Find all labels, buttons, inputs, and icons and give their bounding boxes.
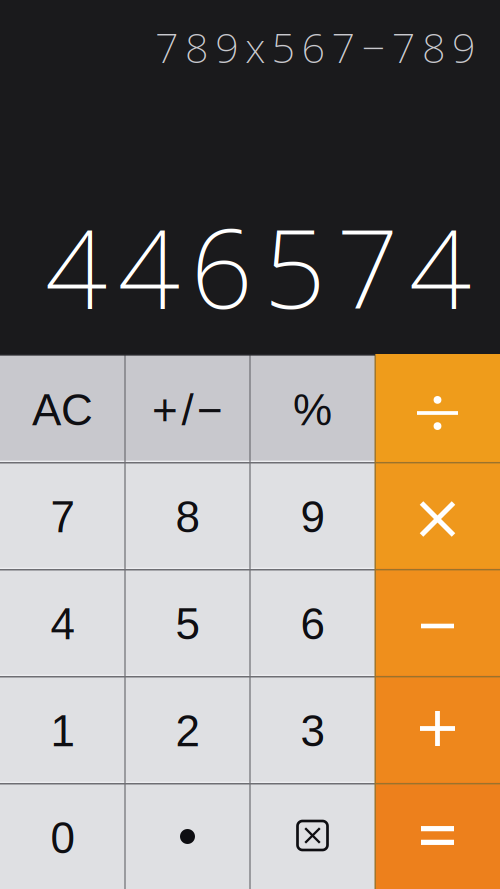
staticText: 446574: [45, 193, 471, 339]
staticText: +/−: [152, 385, 223, 435]
button[interactable]: 9: [250, 461, 375, 568]
button[interactable]: 8: [125, 461, 250, 568]
button[interactable]: %: [250, 354, 375, 461]
button[interactable]: Plus: [375, 675, 500, 782]
button[interactable]: Delete: [250, 782, 375, 889]
staticText: 5: [175, 599, 199, 649]
button[interactable]: AC: [0, 354, 125, 461]
staticText: 3: [300, 706, 324, 756]
staticText: 789x567−789: [155, 20, 476, 74]
button[interactable]: 1: [0, 675, 125, 782]
button[interactable]: +/−: [125, 354, 250, 461]
button[interactable]: 0: [0, 782, 125, 889]
staticText: 7: [50, 492, 74, 542]
button[interactable]: 7: [0, 461, 125, 568]
button[interactable]: 5: [125, 568, 250, 675]
button[interactable]: Equals: [375, 782, 500, 889]
staticText: 9: [300, 492, 324, 542]
staticText: 4: [50, 599, 74, 649]
staticText: 6: [300, 599, 324, 649]
button[interactable]: Minus: [375, 568, 500, 675]
staticText: AC: [32, 385, 93, 435]
button[interactable]: 2: [125, 675, 250, 782]
button[interactable]: 4: [0, 568, 125, 675]
staticText: 0: [50, 813, 74, 863]
button[interactable]: 6: [250, 568, 375, 675]
staticText: 2: [175, 706, 199, 756]
button[interactable]: Decimal point: [125, 782, 250, 889]
staticText: %: [293, 385, 332, 435]
staticText: 8: [175, 492, 199, 542]
button[interactable]: 3: [250, 675, 375, 782]
button[interactable]: Divide: [375, 354, 500, 461]
button[interactable]: Multiply: [375, 461, 500, 568]
staticText: 1: [50, 706, 74, 756]
